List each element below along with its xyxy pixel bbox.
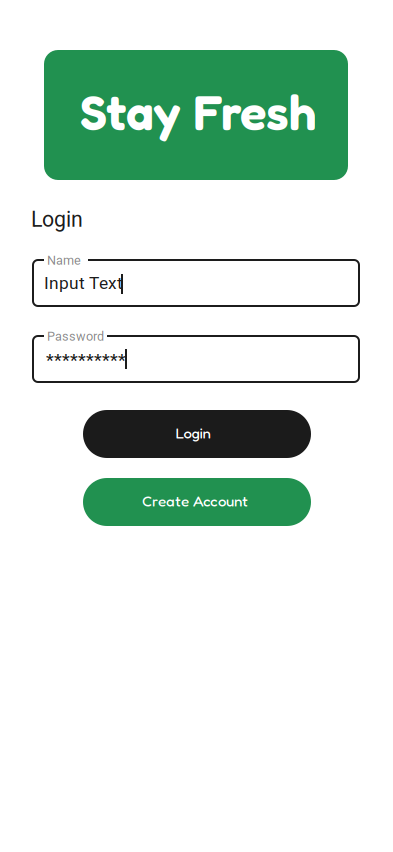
staticText: Create Account — [142, 492, 248, 510]
staticText: Input Text — [44, 273, 123, 293]
staticText: Password — [47, 329, 104, 344]
button[interactable]: Create Account — [83, 478, 311, 526]
button[interactable]: Login — [83, 410, 311, 458]
staticText: Login — [31, 207, 83, 232]
staticText: Name — [47, 253, 81, 268]
staticText: Stay Fresh — [80, 82, 316, 142]
staticText: Login — [175, 424, 210, 442]
staticText: ********** — [46, 350, 126, 370]
